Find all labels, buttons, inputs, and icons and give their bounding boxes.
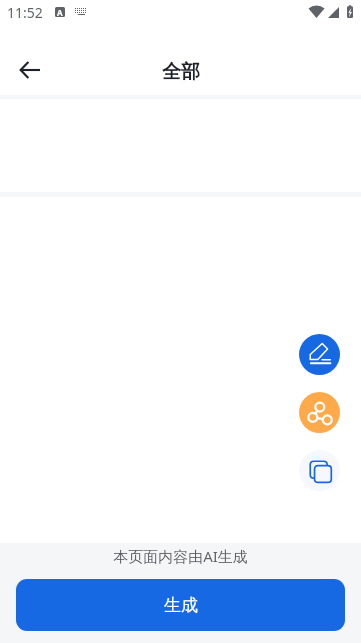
button[interactable]: Copy xyxy=(299,450,340,491)
staticText: 11:52 xyxy=(7,3,43,22)
button[interactable]: New note xyxy=(299,334,340,375)
staticText: A xyxy=(57,7,63,17)
button[interactable]: Share xyxy=(299,392,340,433)
button[interactable]: 生成 xyxy=(16,579,345,631)
staticText: 生成 xyxy=(164,595,198,616)
staticText: 本页面内容由AI生成 xyxy=(113,546,248,566)
button[interactable]: Back xyxy=(10,50,50,90)
staticText: 全部 xyxy=(162,60,200,84)
